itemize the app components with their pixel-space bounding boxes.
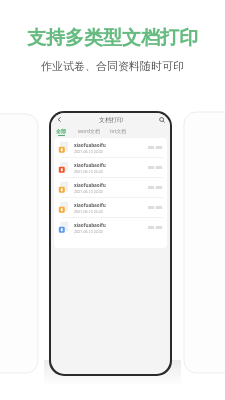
button[interactable]: xiaofuabaoifu <box>54 138 167 157</box>
button[interactable]: xiaofuabaoifu <box>54 198 167 217</box>
staticText: 作业试卷、合同资料随时可印 <box>41 59 184 73</box>
button[interactable]: xiaofuabaoifu <box>54 178 167 197</box>
staticText: xiaofuabaoifu <box>74 202 106 208</box>
staticText: 000 :000 <box>148 205 163 210</box>
button[interactable]: Back <box>55 115 64 124</box>
button[interactable]: Search <box>157 115 166 124</box>
staticText: txt文档 <box>110 128 127 135</box>
staticText: 2021-06-12 22:22 <box>74 229 103 234</box>
button[interactable]: xiaofuabaoifu <box>54 218 167 237</box>
staticText: 支持多类型文档打印 <box>27 26 198 50</box>
staticText: 000 :000 <box>148 145 163 150</box>
staticText: 全部 <box>56 128 66 134</box>
staticText: 000 :000 <box>148 225 163 230</box>
staticText: 000 :000 <box>148 165 163 170</box>
staticText: word文档 <box>78 128 100 135</box>
staticText: 2021-06-12 22:22 <box>74 209 103 214</box>
button[interactable]: 全部 <box>56 128 66 136</box>
staticText: xiaofuabaoifu <box>74 222 106 228</box>
button[interactable]: txt文档 <box>110 128 127 135</box>
staticText: 2021-06-12 22:22 <box>74 189 103 194</box>
staticText: xiaofuabaoifu <box>74 182 106 188</box>
button[interactable]: word文档 <box>78 128 100 135</box>
staticText: 2021-06-12 22:22 <box>74 149 103 154</box>
button[interactable]: xiaofuabaoifu <box>54 158 167 177</box>
staticText: 000 :000 <box>148 185 163 190</box>
staticText: 文档打印 <box>99 116 123 124</box>
staticText: 2021-06-12 22:22 <box>74 169 103 174</box>
staticText: xiaofuabaoifu <box>74 162 106 168</box>
staticText: xiaofuabaoifu <box>74 142 106 148</box>
